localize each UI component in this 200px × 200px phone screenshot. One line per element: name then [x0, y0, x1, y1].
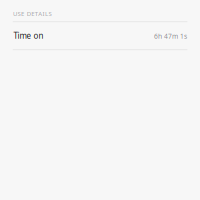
- staticText: USE DETAILS: [13, 9, 51, 18]
- staticText: 6h 47m 1s: [154, 32, 187, 41]
- staticText: Time on: [14, 30, 44, 41]
- button[interactable]: Time on: [0, 22, 200, 49]
